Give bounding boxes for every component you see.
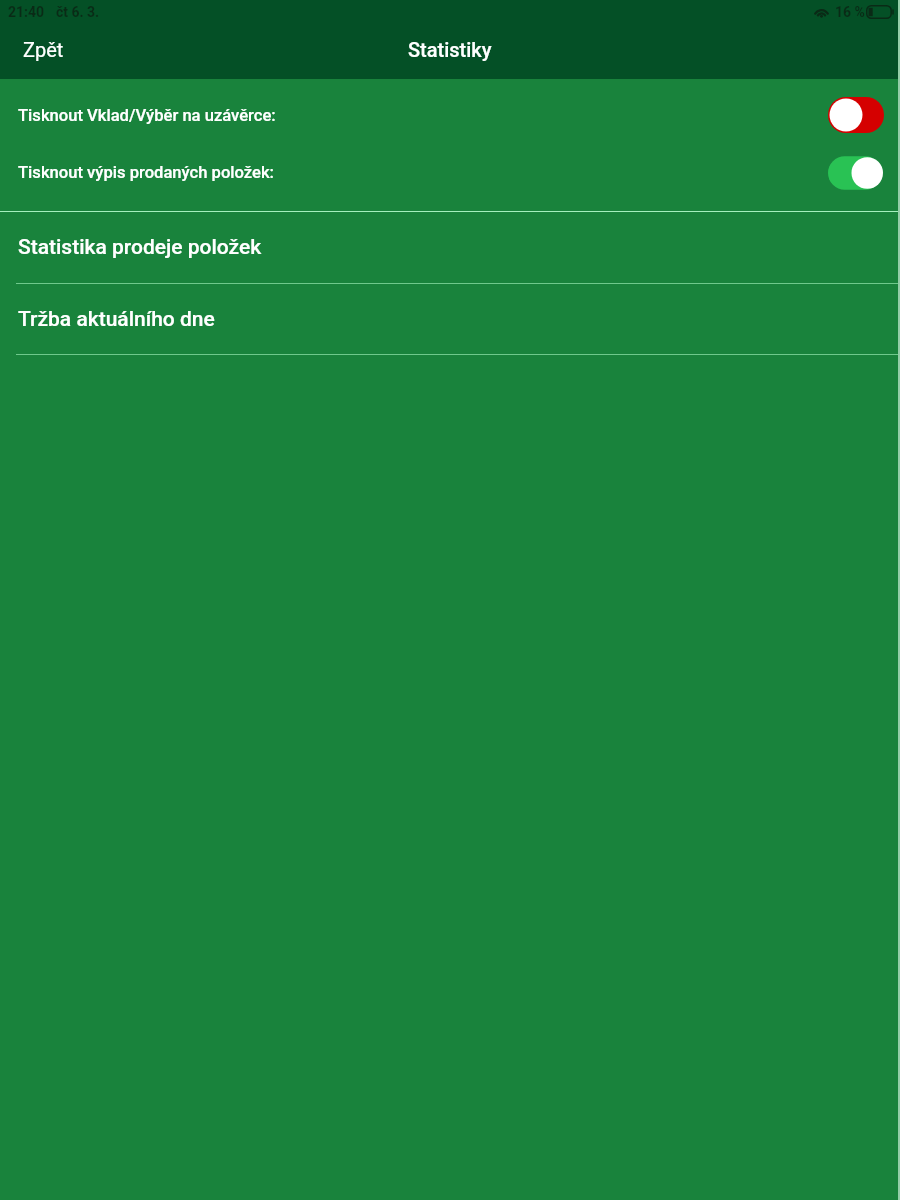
button[interactable]: Zapnuto [828,155,884,191]
staticText: Statistika prodeje položek [18,235,262,260]
staticText: 21:40 [8,4,45,20]
button[interactable]: Tisknout Vklad/Výběr na uzávěrce: [0,86,900,144]
button[interactable]: Tisknout výpis prodaných položek: [0,144,900,201]
button[interactable]: Tržba aktuálního dne [0,284,900,354]
staticText: Statistiky [408,38,492,61]
staticText: Zpět [23,38,64,61]
button[interactable]: Statistika prodeje položek [0,212,900,283]
button[interactable]: Vypnuto [828,97,884,133]
staticText: Tisknout Vklad/Výběr na uzávěrce: [18,106,276,125]
button[interactable]: Zpět [0,26,87,79]
staticText: čt 6. 3. [56,4,100,20]
staticText: 16 % [835,4,865,20]
staticText: Tisknout výpis prodaných položek: [18,163,274,182]
staticText: Tržba aktuálního dne [18,307,215,332]
